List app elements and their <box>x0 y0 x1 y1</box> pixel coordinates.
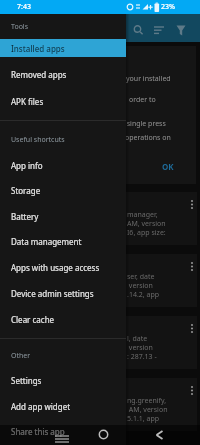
button[interactable]: APK files <box>0 91 126 111</box>
button[interactable]: OK <box>150 158 186 174</box>
button[interactable] <box>145 425 173 445</box>
staticText: version <box>127 281 153 291</box>
staticText: Add app widget <box>11 401 71 412</box>
staticText: operations on <box>125 133 171 143</box>
staticText: manager, <box>127 210 158 220</box>
staticText: version <box>127 343 153 353</box>
staticText: Installed apps <box>11 43 65 54</box>
staticText: Apps with usage access <box>11 262 100 273</box>
staticText: APK files <box>11 96 44 107</box>
button[interactable]: Device admin settings <box>0 283 126 303</box>
staticText: AM, version <box>127 405 168 415</box>
button[interactable]: Installed apps <box>0 39 126 57</box>
staticText: a single press <box>121 119 166 129</box>
staticText: : 287.13 - <box>127 352 157 362</box>
staticText: OK <box>162 161 174 172</box>
button[interactable]: Clear cache <box>0 309 126 329</box>
button[interactable]: Share this app <box>0 421 126 441</box>
button[interactable]: Battery <box>0 206 126 226</box>
staticText: Clear cache <box>11 314 55 325</box>
staticText: App info <box>11 160 43 171</box>
button[interactable] <box>188 378 196 396</box>
button[interactable]: Storage <box>0 180 126 200</box>
button[interactable]: Settings <box>0 370 126 390</box>
staticText: Device admin settings <box>11 288 94 299</box>
button[interactable] <box>149 18 169 38</box>
button[interactable]: Add app widget <box>0 396 126 416</box>
staticText: I6, app size: <box>127 228 166 238</box>
button[interactable] <box>188 254 196 272</box>
staticText: 7:43 <box>17 2 31 12</box>
staticText: Settings <box>11 375 42 386</box>
staticText: Removed apps <box>11 69 67 80</box>
button[interactable] <box>128 18 148 38</box>
staticText: ser, date <box>127 272 155 282</box>
button[interactable] <box>48 425 76 445</box>
staticText: 23% <box>161 2 175 12</box>
staticText: order to <box>129 95 156 105</box>
button[interactable] <box>188 192 196 210</box>
staticText: Tools <box>11 22 29 32</box>
staticText: Storage <box>11 185 41 196</box>
staticText: AM, version <box>127 219 166 229</box>
button[interactable] <box>171 18 191 38</box>
staticText: Battery <box>11 211 39 222</box>
button[interactable] <box>188 316 196 334</box>
staticText: 5.1.1, app <box>127 414 159 424</box>
staticText: Useful shortcuts <box>11 135 65 145</box>
button[interactable]: App info <box>0 155 126 175</box>
staticText: .14.2, app <box>127 290 159 300</box>
staticText: ng.greenify, <box>127 396 167 406</box>
staticText: Share this app <box>11 426 65 437</box>
staticText: Data management <box>11 236 82 247</box>
button[interactable]: Data management <box>0 231 126 251</box>
button[interactable] <box>90 425 118 445</box>
button[interactable]: Apps with usage access <box>0 257 126 277</box>
button[interactable]: Removed apps <box>0 64 126 84</box>
staticText: your installed <box>126 74 171 84</box>
staticText: l, date <box>127 334 148 344</box>
staticText: Other <box>11 351 31 361</box>
